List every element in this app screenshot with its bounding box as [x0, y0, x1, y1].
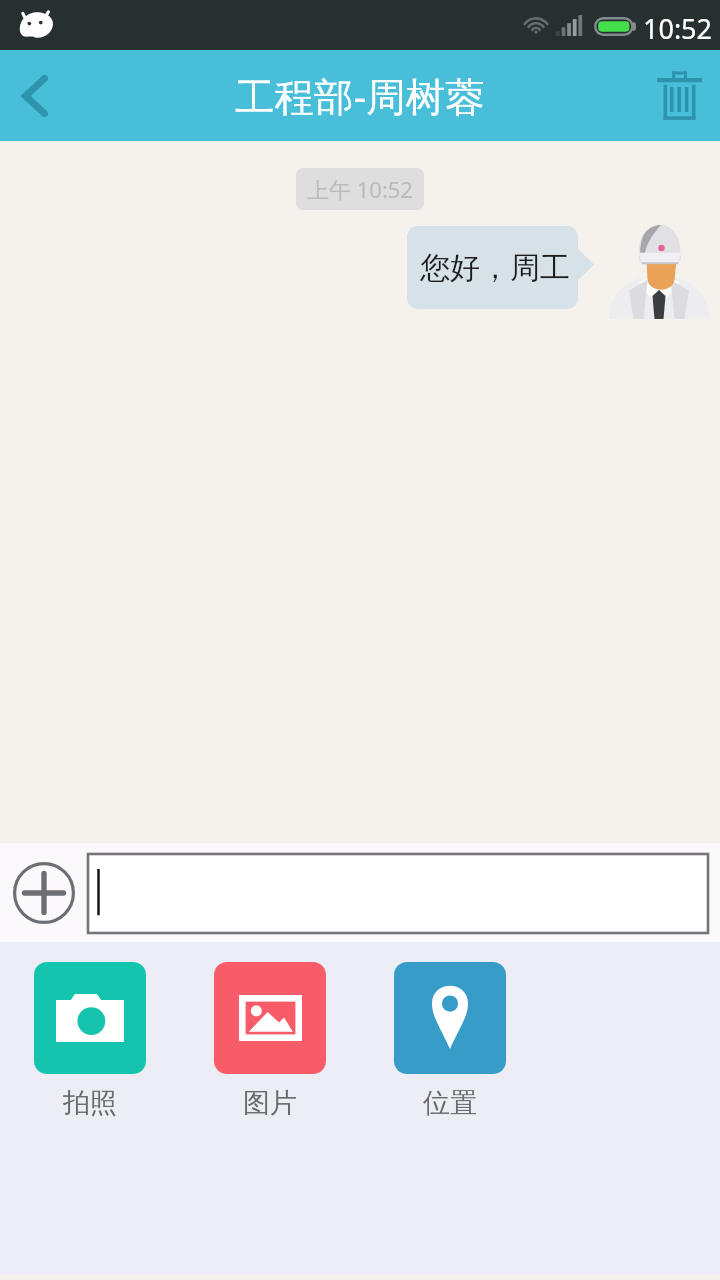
staticText: 图片	[243, 1086, 297, 1120]
button[interactable]: 周树蓉 avatar	[609, 221, 709, 319]
staticText: 10:52	[643, 10, 713, 47]
staticText: 上午 10:52	[307, 174, 413, 204]
staticText: 位置	[423, 1086, 477, 1120]
staticText: 拍照	[63, 1086, 117, 1120]
button[interactable]: Add attachment	[8, 857, 80, 929]
button[interactable]: 您好，周工	[407, 226, 594, 309]
button[interactable]: Delete	[629, 50, 720, 141]
button[interactable]: 图片	[180, 962, 360, 1120]
staticText: 工程部-周树蓉	[235, 69, 485, 123]
button[interactable]: 位置	[360, 962, 540, 1120]
button[interactable]: Back	[0, 50, 80, 141]
staticText: 您好，周工	[420, 249, 570, 287]
button[interactable]	[88, 854, 708, 933]
button[interactable]: 拍照	[0, 962, 180, 1120]
